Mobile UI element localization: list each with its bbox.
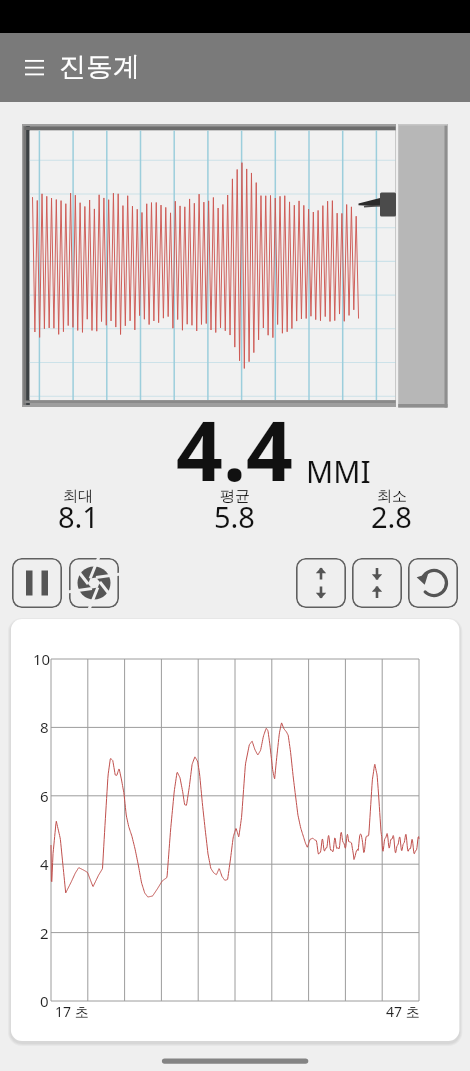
staticText: 4.4: [176, 393, 293, 505]
staticText: 10: [33, 649, 51, 669]
staticText: 진동계: [59, 50, 140, 84]
staticText: 8.1: [58, 497, 99, 536]
button[interactable]: Zoom out: [296, 558, 346, 608]
staticText: 8: [40, 717, 49, 737]
button[interactable]: Menu: [10, 43, 59, 92]
staticText: 최대: [63, 487, 93, 506]
staticText: 2.8: [371, 497, 412, 536]
button[interactable]: Zoom in: [352, 558, 402, 608]
button[interactable]: Reset: [408, 558, 458, 608]
staticText: 최소: [377, 487, 407, 506]
staticText: MMI: [306, 451, 371, 492]
staticText: 47 초: [386, 1002, 420, 1021]
staticText: 6: [40, 786, 49, 806]
staticText: 4: [40, 854, 49, 874]
staticText: 2: [40, 923, 49, 943]
staticText: 17 초: [55, 1002, 89, 1021]
staticText: 5.8: [214, 497, 255, 536]
button[interactable]: Pause: [12, 558, 62, 608]
button[interactable]: Capture: [69, 558, 119, 608]
staticText: 평균: [220, 487, 250, 506]
staticText: 0: [40, 991, 49, 1011]
